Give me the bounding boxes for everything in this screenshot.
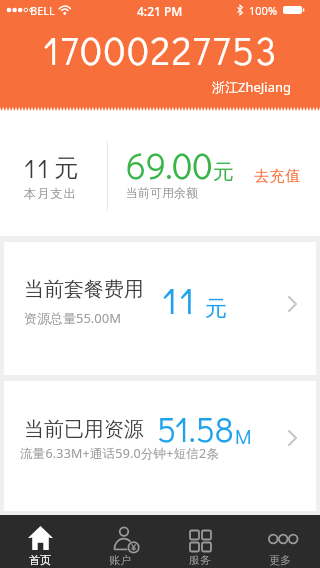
button[interactable]: 当前已用资源 <box>4 381 316 511</box>
staticText: 去充值 <box>254 167 302 186</box>
staticText: 服务 <box>189 553 211 567</box>
staticText: 首页 <box>29 553 51 567</box>
staticText: 本月支出 <box>24 186 77 201</box>
staticText: 元 <box>205 295 227 323</box>
staticText: 当前可用余额 <box>126 185 198 200</box>
button[interactable]: 去充值 <box>243 161 313 191</box>
staticText: 69.00 <box>126 141 213 188</box>
staticText: 当前套餐费用 <box>24 277 144 302</box>
staticText: M <box>235 423 252 449</box>
staticText: 100% <box>249 3 278 18</box>
staticText: 11 <box>162 275 197 324</box>
button[interactable]: 服务 <box>160 515 240 568</box>
staticText: 流量6.33M+通话59.0分钟+短信2条 <box>20 445 220 462</box>
staticText: 17000227753 <box>43 24 278 75</box>
staticText: 当前已用资源 <box>24 417 144 442</box>
button[interactable]: 当前套餐费用 <box>4 242 316 375</box>
button[interactable]: 账户 <box>80 515 160 568</box>
staticText: 元 <box>54 153 78 183</box>
staticText: 资源总量55.00M <box>24 309 122 327</box>
button[interactable]: 首页 <box>0 515 80 568</box>
staticText: BELL <box>30 3 55 18</box>
staticText: 4:21 PM <box>137 3 183 19</box>
staticText: 51.58 <box>157 406 234 451</box>
staticText: 11 <box>24 150 51 185</box>
staticText: 更多 <box>269 553 291 567</box>
staticText: 账户 <box>109 553 131 567</box>
button[interactable]: 更多 <box>240 515 320 568</box>
staticText: 浙江ZheJiang <box>212 78 292 96</box>
staticText: 元 <box>213 159 234 185</box>
